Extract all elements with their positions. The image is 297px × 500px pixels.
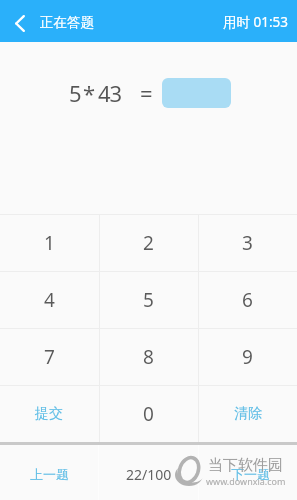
button[interactable]: 清除: [198, 385, 297, 442]
button[interactable]: 下一题: [198, 442, 297, 500]
staticText: 当下软件园: [208, 456, 283, 475]
staticText: =: [140, 78, 153, 108]
staticText: 6: [242, 287, 253, 313]
staticText: 5: [69, 78, 82, 108]
staticText: 2: [143, 230, 154, 256]
staticText: 上一题: [30, 466, 69, 482]
button[interactable]: 0: [99, 385, 198, 442]
button[interactable]: 5: [99, 271, 198, 328]
staticText: 8: [143, 344, 154, 370]
staticText: 用时 01:53: [223, 13, 289, 31]
staticText: 5: [143, 287, 154, 313]
staticText: 3: [242, 230, 253, 256]
button[interactable]: 8: [99, 328, 198, 385]
staticText: 22/100: [126, 465, 172, 484]
staticText: 清除: [234, 405, 262, 423]
staticText: 提交: [35, 405, 63, 423]
button[interactable]: 6: [198, 271, 297, 328]
button[interactable]: 3: [198, 214, 297, 271]
staticText: 43: [98, 78, 122, 108]
staticText: 正在答题: [40, 14, 94, 31]
button[interactable]: 9: [198, 328, 297, 385]
staticText: 下一题: [231, 466, 270, 482]
button[interactable]: 2: [99, 214, 198, 271]
button[interactable]: 上一题: [0, 442, 99, 500]
button[interactable]: 1: [0, 214, 99, 271]
button[interactable]: Back: [4, 7, 36, 39]
staticText: 1: [44, 230, 55, 256]
button[interactable]: 提交: [0, 385, 99, 442]
button[interactable]: 4: [0, 271, 99, 328]
staticText: 0: [143, 401, 154, 427]
staticText: *: [83, 78, 96, 108]
staticText: 7: [44, 344, 55, 370]
staticText: 9: [242, 344, 253, 370]
staticText: 4: [44, 287, 55, 313]
staticText: www.downxia.com: [206, 475, 286, 487]
button[interactable]: 7: [0, 328, 99, 385]
button[interactable]: Answer: [162, 78, 231, 108]
